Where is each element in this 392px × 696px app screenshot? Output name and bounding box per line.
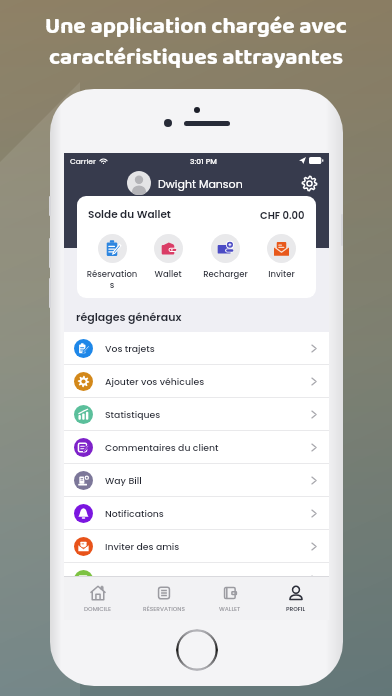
staticText: Commentaires du client: [105, 441, 219, 454]
button[interactable]: PROFIL: [263, 577, 329, 620]
staticText: 3:01 PM: [190, 156, 217, 166]
staticText: Inviter des amis: [105, 540, 180, 553]
button[interactable]: Recharger: [199, 234, 251, 280]
button[interactable]: Vos trajets: [64, 332, 329, 364]
staticText: Inviter: [268, 268, 295, 280]
staticText: Way Bill: [105, 474, 142, 487]
staticText: PROFIL: [286, 605, 306, 613]
staticText: WALLET: [219, 605, 241, 613]
staticText: Contacts d'urgence: [105, 573, 198, 586]
staticText: Réservations: [86, 268, 138, 291]
button[interactable]: Commentaires du client: [64, 431, 329, 463]
staticText: Ajouter vos véhicules: [105, 375, 205, 388]
staticText: CHF 0.00: [260, 208, 305, 222]
staticText: Dwight Manson: [158, 176, 243, 191]
button[interactable]: WALLET: [197, 577, 263, 620]
button[interactable]: Settings: [298, 172, 320, 194]
button[interactable]: Ajouter vos véhicules: [64, 365, 329, 397]
staticText: Solde du Wallet: [88, 207, 171, 222]
button[interactable]: Way Bill: [64, 464, 329, 496]
button[interactable]: Réservations: [86, 234, 138, 291]
staticText: Notifications: [105, 507, 164, 520]
staticText: Wallet: [154, 268, 182, 280]
button[interactable]: Inviter des amis: [64, 530, 329, 562]
button[interactable]: DOMICILE: [64, 577, 131, 620]
staticText: réglages généraux: [76, 309, 182, 324]
staticText: Recharger: [203, 268, 248, 280]
staticText: Une application chargée avec caractérist…: [0, 8, 392, 76]
button[interactable]: RÉSERVATIONS: [131, 577, 197, 620]
staticText: Statistiques: [105, 408, 161, 421]
button[interactable]: Inviter: [255, 234, 307, 280]
staticText: DOMICILE: [84, 605, 111, 613]
button[interactable]: Notifications: [64, 497, 329, 529]
staticText: RÉSERVATIONS: [143, 605, 185, 613]
staticText: Vos trajets: [105, 342, 155, 355]
button[interactable]: Statistiques: [64, 398, 329, 430]
button[interactable]: Wallet: [142, 234, 194, 280]
staticText: Carrier: [70, 156, 96, 166]
button[interactable]: Contacts d'urgence: [64, 563, 329, 595]
